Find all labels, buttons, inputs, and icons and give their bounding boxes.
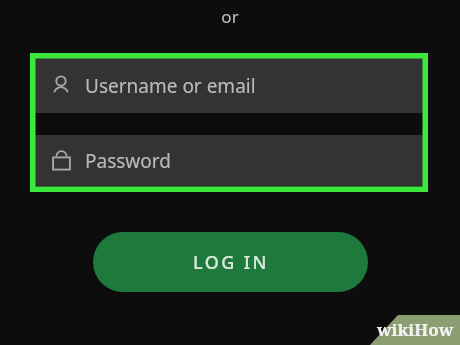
button[interactable]: Username or email (35, 58, 423, 113)
staticText: LOG IN (193, 250, 269, 275)
staticText: Password (85, 148, 171, 174)
staticText: wikiHow (377, 318, 454, 341)
staticText: or (0, 5, 460, 345)
button[interactable]: LOG IN (93, 232, 368, 292)
staticText: Username or email (85, 73, 256, 99)
button[interactable]: Password (35, 135, 423, 186)
